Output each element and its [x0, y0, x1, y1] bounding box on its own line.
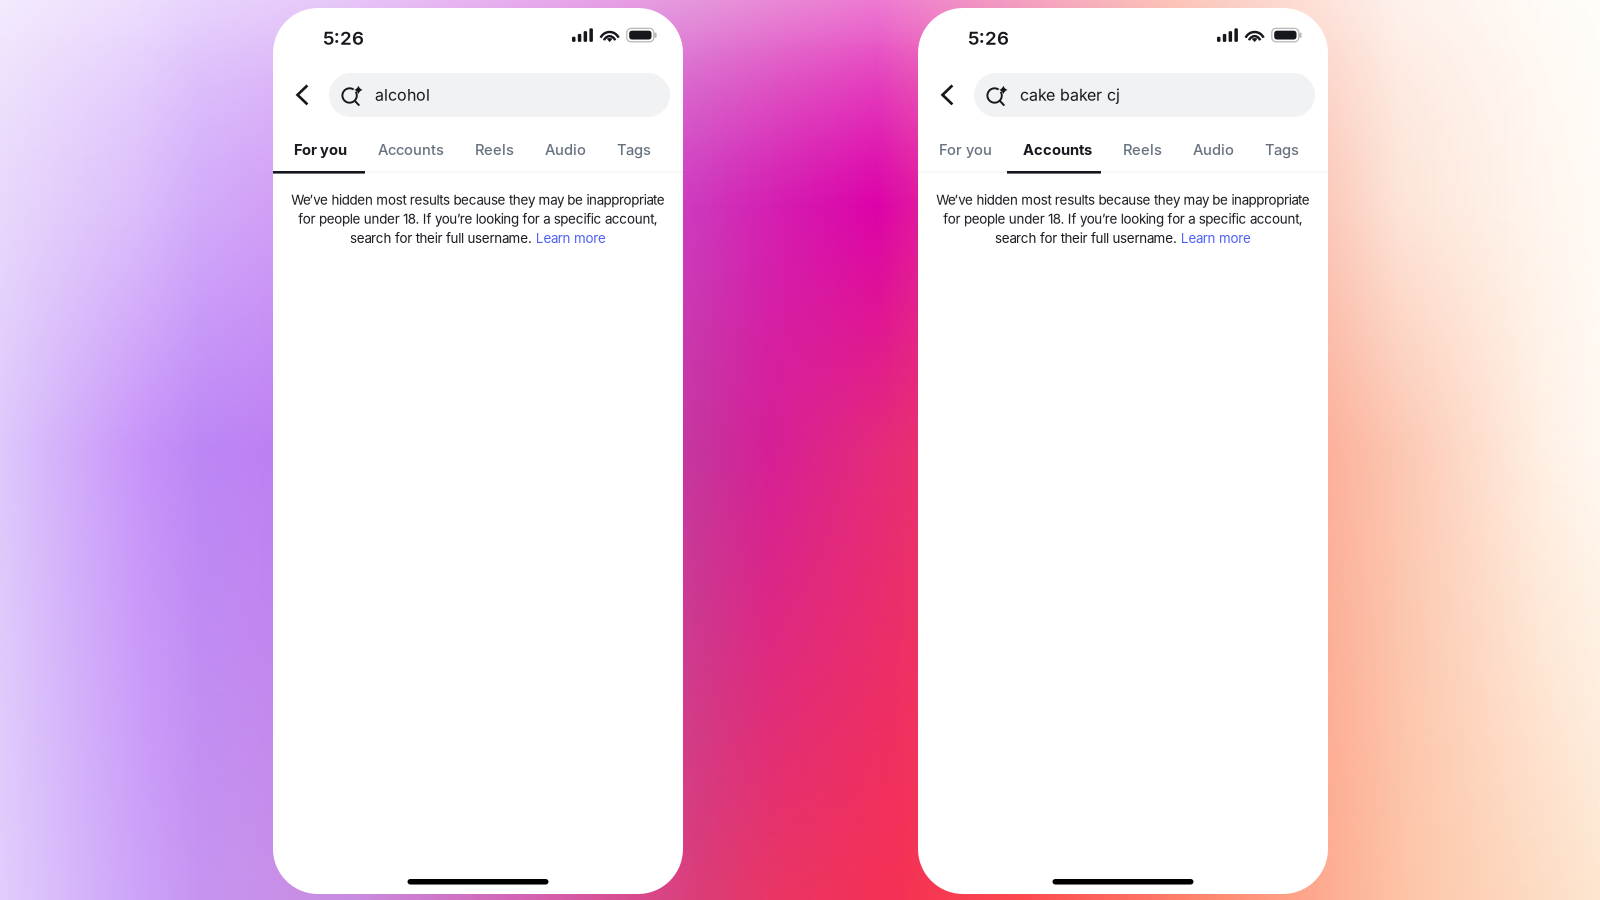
button[interactable]: Reels: [1123, 141, 1162, 177]
button[interactable]: Audio: [1193, 141, 1234, 177]
button[interactable]: Learn more: [536, 230, 606, 246]
button[interactable]: For you: [939, 141, 992, 177]
button[interactable]: Back: [296, 73, 330, 117]
staticText: 5:26: [323, 27, 364, 49]
staticText: Tags: [617, 141, 651, 158]
staticText: For you: [294, 141, 347, 158]
button[interactable]: alcohol: [329, 73, 670, 117]
button[interactable]: Accounts: [1023, 141, 1092, 177]
staticText: Accounts: [378, 141, 444, 158]
staticText: Accounts: [1023, 141, 1092, 158]
button[interactable]: Accounts: [378, 141, 444, 177]
button[interactable]: Tags: [1265, 141, 1299, 177]
button[interactable]: Reels: [475, 141, 514, 177]
staticText: search for their full username.: [995, 230, 1181, 246]
staticText: cake baker cj: [1020, 86, 1120, 104]
button[interactable]: Learn more: [1181, 230, 1251, 246]
button[interactable]: Tags: [617, 141, 651, 177]
staticText: for people under 18. If you’re looking f…: [298, 211, 658, 227]
staticText: Audio: [1193, 141, 1234, 158]
staticText: Reels: [1123, 141, 1162, 158]
staticText: 5:26: [968, 27, 1009, 49]
staticText: for people under 18. If you’re looking f…: [943, 211, 1303, 227]
staticText: For you: [939, 141, 992, 158]
staticText: Learn more: [536, 230, 606, 246]
staticText: We’ve hidden most results because they m…: [291, 192, 665, 208]
staticText: Reels: [475, 141, 514, 158]
staticText: Tags: [1265, 141, 1299, 158]
staticText: search for their full username.: [350, 230, 536, 246]
button[interactable]: Back: [941, 73, 975, 117]
staticText: Learn more: [1181, 230, 1251, 246]
staticText: Audio: [545, 141, 586, 158]
button[interactable]: cake baker cj: [974, 73, 1315, 117]
staticText: alcohol: [375, 86, 430, 104]
staticText: We’ve hidden most results because they m…: [936, 192, 1310, 208]
button[interactable]: Audio: [545, 141, 586, 177]
button[interactable]: For you: [294, 141, 347, 177]
